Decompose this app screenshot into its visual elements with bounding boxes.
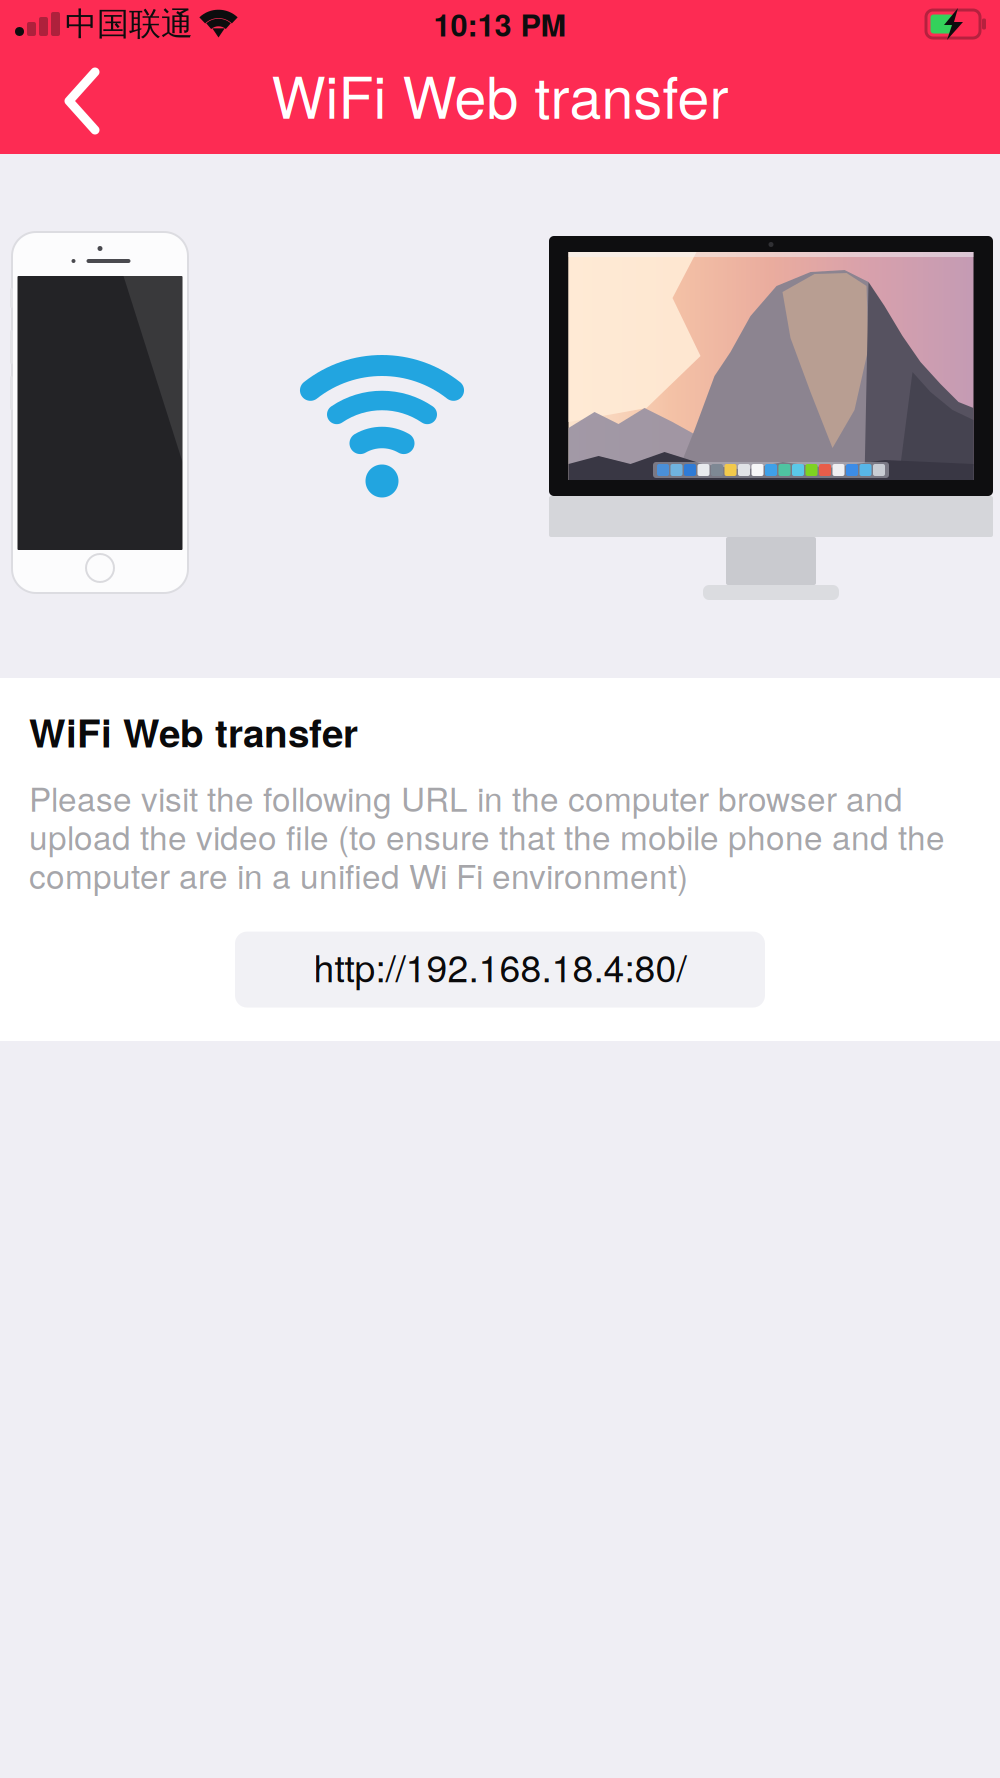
staticText: 中国联通 (65, 4, 193, 44)
staticText: 10:13 PM (433, 2, 566, 46)
button[interactable]: Back (0, 48, 145, 154)
staticText: Please visit the following URL in the co… (29, 773, 945, 899)
staticText: http://192.168.18.4:80/ (313, 939, 686, 993)
button[interactable]: http://192.168.18.4:80/ (235, 932, 765, 1008)
staticText: WiFi Web transfer (271, 53, 728, 135)
staticText: WiFi Web transfer (29, 704, 358, 759)
